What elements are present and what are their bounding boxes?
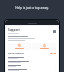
button[interactable]: Support topic [6,56,58,60]
button[interactable]: Support topic [6,60,58,64]
staticText: See all [50,52,56,55]
button[interactable]: Support topic [6,64,58,68]
staticText: Help is just a tap away. [15,6,49,10]
button[interactable]: See all [50,52,56,55]
staticText: Support [8,28,20,32]
button[interactable]: Chat with us [8,43,31,50]
button[interactable]: Profile [53,30,56,33]
button[interactable]: Call us [32,43,56,50]
staticText: Travel Support [8,52,50,55]
button[interactable]: Support topic [6,68,58,72]
